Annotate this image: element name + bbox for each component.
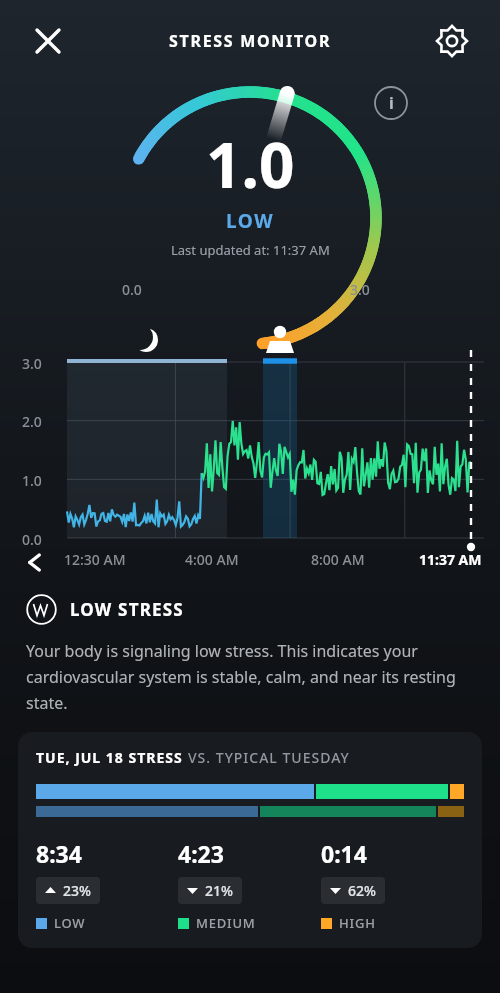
staticText: Last updated at: 11:37 AM xyxy=(171,241,330,259)
staticText: MEDIUM xyxy=(196,914,256,932)
staticText: 21% xyxy=(205,881,233,900)
staticText: TUE, JUL 18 STRESS xyxy=(36,748,188,767)
button[interactable]: Info xyxy=(372,84,410,122)
staticText: 4:00 AM xyxy=(185,550,239,569)
staticText: 11:37 AM xyxy=(419,550,482,569)
staticText: 1.0 xyxy=(206,122,295,206)
staticText: 23% xyxy=(63,881,91,900)
staticText: 2.0 xyxy=(22,412,42,431)
staticText: VS. TYPICAL TUESDAY xyxy=(188,748,350,767)
button[interactable]: TUE, JUL 18 STRESS xyxy=(18,732,482,948)
staticText: HIGH xyxy=(339,914,376,932)
staticText: 8:34 xyxy=(36,838,82,869)
button[interactable]: 23% xyxy=(36,877,100,904)
staticText: 1.0 xyxy=(22,471,42,490)
button[interactable]: Settings xyxy=(430,19,474,63)
staticText: LOW STRESS xyxy=(70,598,184,621)
staticText: LOW xyxy=(54,914,86,932)
staticText: 8:00 AM xyxy=(311,550,365,569)
staticText: 62% xyxy=(348,881,376,900)
button[interactable]: 21% xyxy=(178,877,242,904)
staticText: i xyxy=(389,92,394,114)
button[interactable]: Close xyxy=(26,19,70,63)
staticText: Your body is signaling low stress. This … xyxy=(26,640,474,714)
button[interactable]: 62% xyxy=(321,877,385,904)
staticText: 0.0 xyxy=(22,530,42,549)
staticText: 4:23 xyxy=(178,838,224,869)
staticText: 3.0 xyxy=(350,280,370,299)
staticText: 0.0 xyxy=(122,280,142,299)
staticText: 3.0 xyxy=(22,354,42,373)
staticText: 12:30 AM xyxy=(64,550,126,569)
staticText: LOW xyxy=(226,208,275,234)
staticText: STRESS MONITOR xyxy=(169,30,332,52)
button[interactable]: Previous day xyxy=(14,542,54,582)
staticText: 0:14 xyxy=(321,838,367,869)
